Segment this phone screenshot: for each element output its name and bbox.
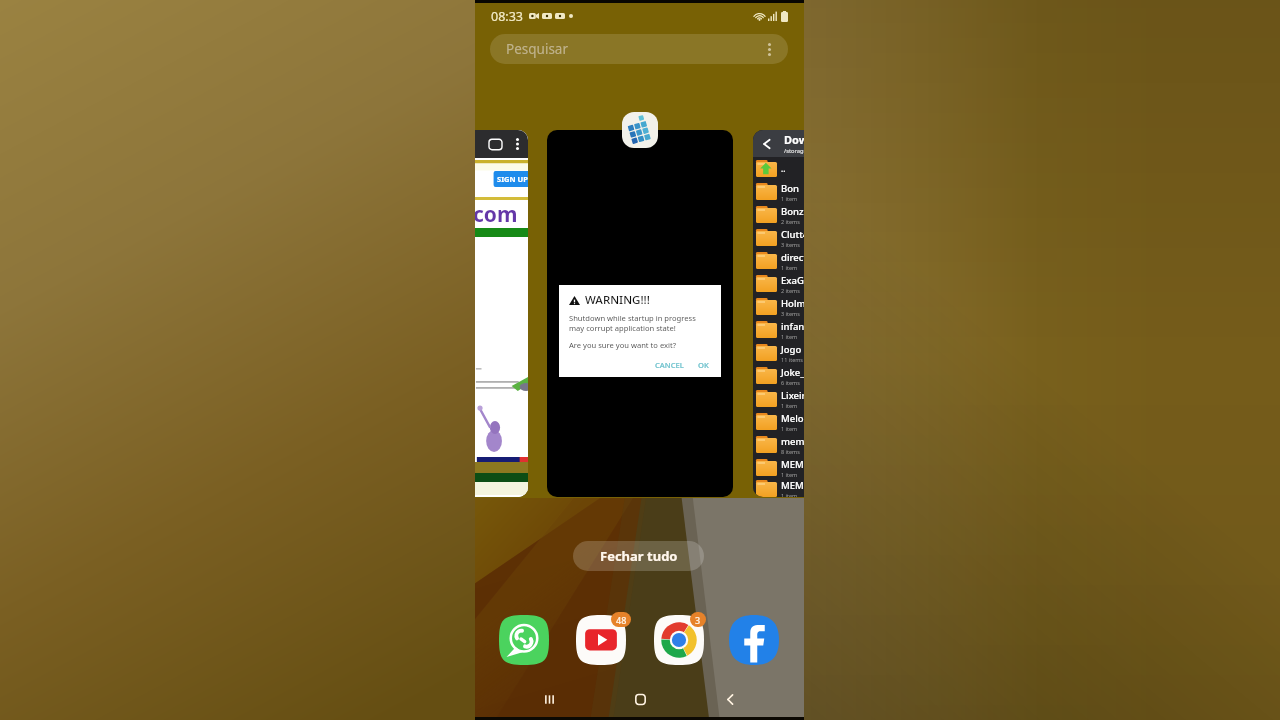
button[interactable]: WhatsApp [499,615,551,667]
button[interactable]: infanvie [753,318,804,341]
button[interactable]: Home [623,682,657,716]
button[interactable]: App icon [622,112,658,148]
staticText: Fechar tudo [600,547,678,565]
button[interactable]: memz [753,433,804,456]
staticText: MEMZ 4 [781,479,804,492]
staticText: Bon [781,182,799,195]
staticText: Holmiu [781,297,804,310]
button[interactable]: Recents [532,682,566,716]
staticText: 11 items [781,356,804,363]
button[interactable]: Bonzi [753,203,804,226]
staticText: OK [698,360,709,370]
button[interactable]: Downloads [753,130,804,497]
staticText: 6 items [781,379,800,386]
staticText: 1 item [781,425,798,432]
staticText: ExaGear [781,274,804,287]
staticText: /storage/emulated/0/Dow [784,147,804,155]
staticText: 1 item [781,471,798,478]
staticText: 3 items [781,241,800,248]
button[interactable]: MEMZ 3 [753,456,804,479]
staticText: CANCEL [655,360,684,370]
button[interactable]: Lixeira_ [753,387,804,410]
button[interactable]: SIGN UP [475,130,528,497]
staticText: Pesquisar [506,40,568,58]
staticText: memz [781,435,804,448]
staticText: SIGN UP [497,174,528,184]
button[interactable]: Melon M [753,410,804,433]
button[interactable]: Facebook [729,615,781,667]
staticText: 1 item [781,492,798,497]
staticText: 1 item [781,195,798,202]
staticText: 2 items [781,218,800,225]
staticText: 1 item [781,264,798,271]
staticText: infanvie [781,320,804,333]
staticText: 3 [695,614,701,626]
staticText: Clutt4.5 [781,228,804,241]
staticText: com [475,200,518,229]
staticText: 08:33 [491,8,523,25]
button[interactable]: YouTube [576,615,628,667]
staticText: Are you sure you want to exit? [569,340,677,350]
staticText: MEMZ 3 [781,458,804,471]
button[interactable]: MEMZ 4 [753,479,804,497]
button[interactable]: Chrome [654,615,706,667]
button[interactable]: Bon [753,180,804,203]
button[interactable]: Pesquisar [490,34,788,64]
button[interactable]: Holmiu [753,295,804,318]
staticText: Shutdown while startup in progress may c… [569,313,696,333]
button[interactable]: WARNING!!! [547,130,733,497]
staticText: Lixeira_ [781,389,804,402]
staticText: Jogo [781,343,802,356]
staticText: Joke_P [781,366,804,379]
button[interactable]: Joke_P [753,364,804,387]
button[interactable]: ExaGear [753,272,804,295]
staticText: 48 [616,614,627,626]
staticText: Downloads [784,132,804,147]
staticText: 1 item [781,333,798,340]
staticText: 3 items [781,310,800,317]
staticText: 1 item [781,402,798,409]
button[interactable]: Back [713,682,747,716]
button[interactable]: Jogo [753,341,804,364]
staticText: 8 items [781,448,800,455]
staticText: 2 items [781,287,800,294]
button[interactable]: directx- [753,249,804,272]
button[interactable]: OK [696,358,711,372]
button[interactable]: CANCEL [653,358,686,372]
staticText: WARNING!!! [585,292,650,308]
staticText: Melon M [781,412,804,425]
staticText: directx- [781,251,804,264]
button[interactable]: Fechar tudo [573,541,704,571]
staticText: .. [781,163,786,174]
button[interactable]: Clutt4.5 [753,226,804,249]
staticText: Bonzi [781,205,804,218]
button[interactable]: More options [762,42,776,56]
button[interactable]: .. [753,157,804,180]
